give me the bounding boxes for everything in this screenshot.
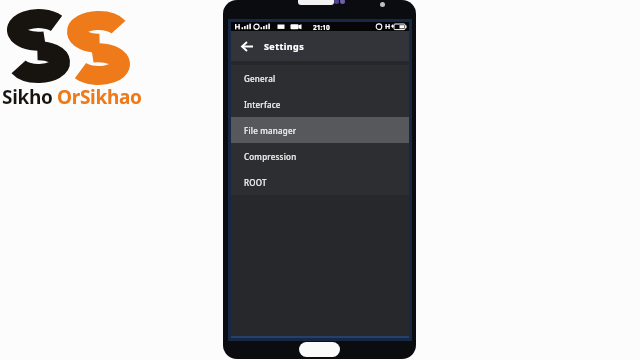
staticText: General bbox=[244, 73, 276, 84]
button[interactable]: File manager bbox=[231, 117, 409, 143]
staticText: OrSikhao bbox=[57, 84, 142, 110]
staticText: ROOT bbox=[244, 177, 267, 188]
staticText: 21:10 bbox=[313, 23, 330, 32]
button[interactable] bbox=[299, 342, 340, 357]
button[interactable]: ROOT bbox=[231, 169, 409, 195]
staticText: Interface bbox=[244, 99, 281, 110]
staticText: Compression bbox=[244, 151, 297, 162]
button[interactable]: Interface bbox=[231, 91, 409, 117]
staticText: File manager bbox=[244, 125, 297, 136]
staticText: Settings bbox=[264, 40, 305, 52]
button[interactable]: Compression bbox=[231, 143, 409, 169]
button[interactable]: Settings bbox=[231, 31, 409, 61]
staticText: Sikho bbox=[2, 84, 53, 110]
button[interactable]: General bbox=[231, 65, 409, 91]
